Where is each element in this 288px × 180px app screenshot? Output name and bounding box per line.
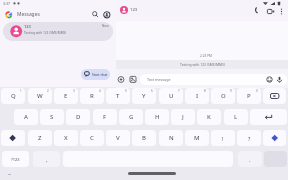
button[interactable]: X bbox=[54, 130, 78, 146]
button[interactable]: L bbox=[224, 109, 248, 125]
button[interactable]: ? bbox=[237, 130, 261, 146]
staticText: Now bbox=[102, 24, 109, 28]
staticText: G bbox=[129, 113, 134, 121]
staticText: R bbox=[90, 92, 94, 100]
button[interactable] bbox=[128, 74, 138, 85]
staticText: Messages bbox=[17, 11, 40, 18]
button[interactable]: U bbox=[159, 88, 183, 104]
button[interactable]: R bbox=[80, 88, 104, 104]
staticText: ?123 bbox=[11, 157, 20, 162]
button[interactable] bbox=[250, 109, 287, 125]
button[interactable]: T bbox=[106, 88, 130, 104]
staticText: Text message bbox=[147, 77, 171, 82]
staticText: J bbox=[182, 113, 184, 121]
button[interactable]: P bbox=[237, 88, 261, 104]
staticText: Texting with 123 (SMS/MMS) bbox=[24, 31, 67, 35]
button[interactable] bbox=[103, 11, 111, 19]
button[interactable]: A bbox=[14, 109, 38, 125]
button[interactable]: F bbox=[93, 109, 117, 125]
button[interactable] bbox=[1, 130, 25, 146]
button[interactable]: E bbox=[54, 88, 78, 104]
staticText: W bbox=[37, 92, 43, 100]
button[interactable]: V bbox=[106, 130, 130, 146]
button[interactable] bbox=[277, 6, 286, 17]
staticText: Q bbox=[11, 92, 16, 100]
staticText: B bbox=[142, 134, 146, 142]
button[interactable]: W bbox=[28, 88, 52, 104]
staticText: Z bbox=[38, 134, 42, 142]
button[interactable]: I bbox=[185, 88, 209, 104]
staticText: O bbox=[221, 92, 226, 100]
staticText: M bbox=[194, 134, 200, 142]
button[interactable] bbox=[116, 74, 126, 85]
staticText: ? bbox=[248, 135, 251, 142]
staticText: C bbox=[90, 134, 94, 142]
staticText: 123 bbox=[24, 24, 31, 29]
button[interactable]: H bbox=[145, 109, 169, 125]
staticText: 8 bbox=[204, 89, 206, 93]
staticText: K bbox=[207, 113, 211, 121]
button[interactable]: ?123 bbox=[2, 151, 29, 167]
staticText: . bbox=[249, 156, 251, 163]
staticText: F bbox=[103, 113, 107, 121]
staticText: 7 bbox=[178, 89, 180, 93]
staticText: Start chat bbox=[92, 72, 108, 76]
button[interactable]: O bbox=[211, 88, 235, 104]
button[interactable]: D bbox=[66, 109, 90, 125]
button[interactable]: Start chat bbox=[81, 69, 110, 80]
staticText: Texting with 123 (SMS/MMS) bbox=[180, 62, 225, 67]
button[interactable]: J bbox=[171, 109, 195, 125]
staticText: N bbox=[169, 134, 174, 142]
staticText: H bbox=[155, 113, 160, 121]
button[interactable]: . bbox=[238, 151, 262, 167]
button[interactable] bbox=[90, 9, 100, 19]
staticText: I bbox=[196, 92, 199, 100]
button[interactable]: C bbox=[80, 130, 104, 146]
staticText: V bbox=[116, 134, 120, 142]
staticText: 9 bbox=[230, 89, 232, 93]
button[interactable]: G bbox=[119, 109, 143, 125]
staticText: Y bbox=[142, 92, 146, 100]
button[interactable]: K bbox=[197, 109, 221, 125]
button[interactable]: 123 bbox=[3, 22, 113, 41]
button[interactable] bbox=[263, 130, 286, 146]
button[interactable]: Y bbox=[132, 88, 156, 104]
staticText: 6 bbox=[151, 89, 153, 93]
button[interactable]: ! bbox=[211, 130, 235, 146]
staticText: T bbox=[116, 92, 120, 100]
staticText: L bbox=[234, 113, 238, 121]
staticText: 0 bbox=[256, 89, 258, 93]
staticText: , bbox=[46, 156, 48, 163]
button[interactable] bbox=[265, 6, 276, 17]
button[interactable]: , bbox=[33, 151, 60, 167]
staticText: 2:23 PM bbox=[200, 54, 212, 58]
staticText: X bbox=[64, 134, 68, 142]
staticText: 3:37 bbox=[3, 1, 11, 6]
button[interactable] bbox=[263, 88, 286, 104]
staticText: P bbox=[247, 92, 251, 100]
staticText: E bbox=[64, 92, 68, 100]
button[interactable] bbox=[120, 6, 128, 14]
staticText: 123 bbox=[130, 7, 138, 13]
staticText: 5 bbox=[125, 89, 127, 93]
staticText: ! bbox=[222, 135, 224, 142]
button[interactable] bbox=[253, 6, 264, 17]
staticText: S bbox=[50, 113, 54, 121]
staticText: 3 bbox=[73, 89, 75, 93]
button[interactable]: Z bbox=[28, 130, 52, 146]
button[interactable]: Text message bbox=[140, 74, 287, 85]
button[interactable]: M bbox=[185, 130, 209, 146]
button[interactable]: Q bbox=[1, 88, 25, 104]
staticText: U bbox=[169, 92, 174, 100]
button[interactable]: B bbox=[132, 130, 156, 146]
staticText: D bbox=[76, 113, 81, 121]
staticText: A bbox=[24, 113, 28, 121]
button[interactable]: N bbox=[159, 130, 183, 146]
button[interactable]: S bbox=[40, 109, 64, 125]
staticText: 2 bbox=[47, 89, 49, 93]
staticText: 1 bbox=[20, 89, 22, 93]
staticText: 4 bbox=[99, 89, 101, 93]
